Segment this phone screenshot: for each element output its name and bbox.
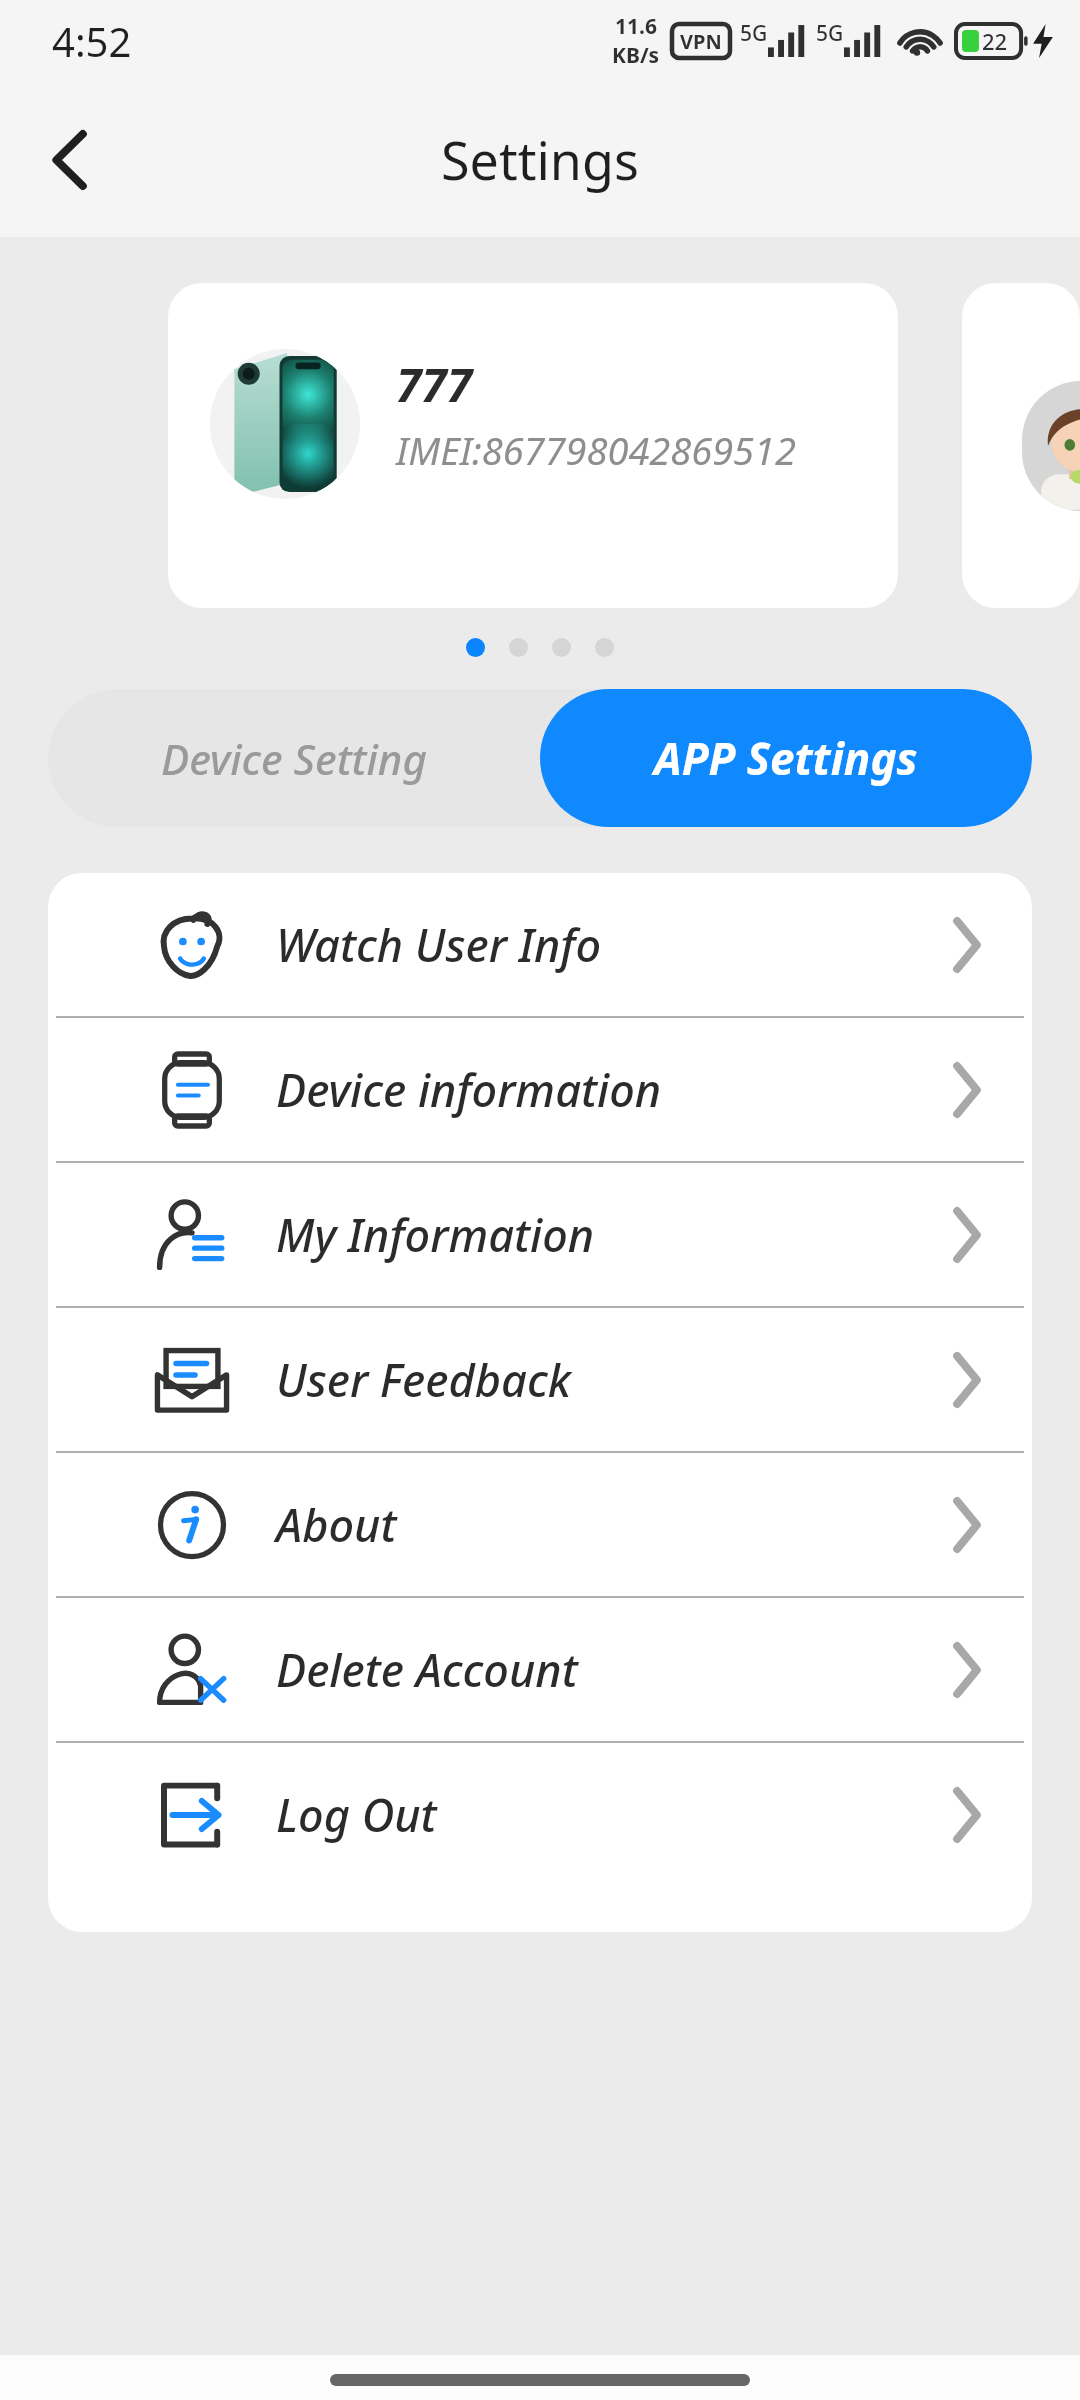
button[interactable]: 777 — [168, 283, 898, 608]
button[interactable]: User Feedback — [48, 1308, 1032, 1453]
staticText: User Feedback — [276, 1349, 571, 1410]
staticText: My Information — [276, 1204, 595, 1265]
button[interactable]: Watch User Info — [48, 873, 1032, 1018]
button[interactable]: Delete Account — [48, 1598, 1032, 1743]
staticText: Delete Account — [276, 1639, 578, 1700]
staticText: 11.6 — [615, 12, 657, 41]
button[interactable]: About — [48, 1453, 1032, 1598]
button[interactable]: Back — [26, 116, 114, 204]
button[interactable] — [962, 283, 1080, 608]
staticText: Settings — [441, 124, 639, 195]
staticText: VPN — [680, 28, 722, 55]
button[interactable]: Device Setting — [48, 689, 540, 827]
staticText: 777 — [396, 353, 473, 416]
button[interactable]: APP Settings — [540, 689, 1032, 827]
staticText: IMEI:867798042869512 — [396, 424, 796, 476]
staticText: About — [276, 1494, 397, 1555]
staticText: 5G — [816, 19, 844, 48]
staticText: Device Setting — [161, 730, 427, 787]
staticText: Device information — [276, 1059, 662, 1120]
button[interactable]: Device information — [48, 1018, 1032, 1163]
staticText: 4:52 — [52, 14, 132, 68]
staticText: KB/s — [612, 41, 660, 70]
staticText: Watch User Info — [276, 914, 602, 975]
staticText: Log Out — [276, 1784, 437, 1845]
staticText: APP Settings — [654, 728, 918, 788]
button[interactable]: My Information — [48, 1163, 1032, 1308]
staticText: 5G — [740, 19, 768, 48]
button[interactable]: Log Out — [48, 1743, 1032, 1886]
staticText: 22 — [982, 26, 1008, 56]
